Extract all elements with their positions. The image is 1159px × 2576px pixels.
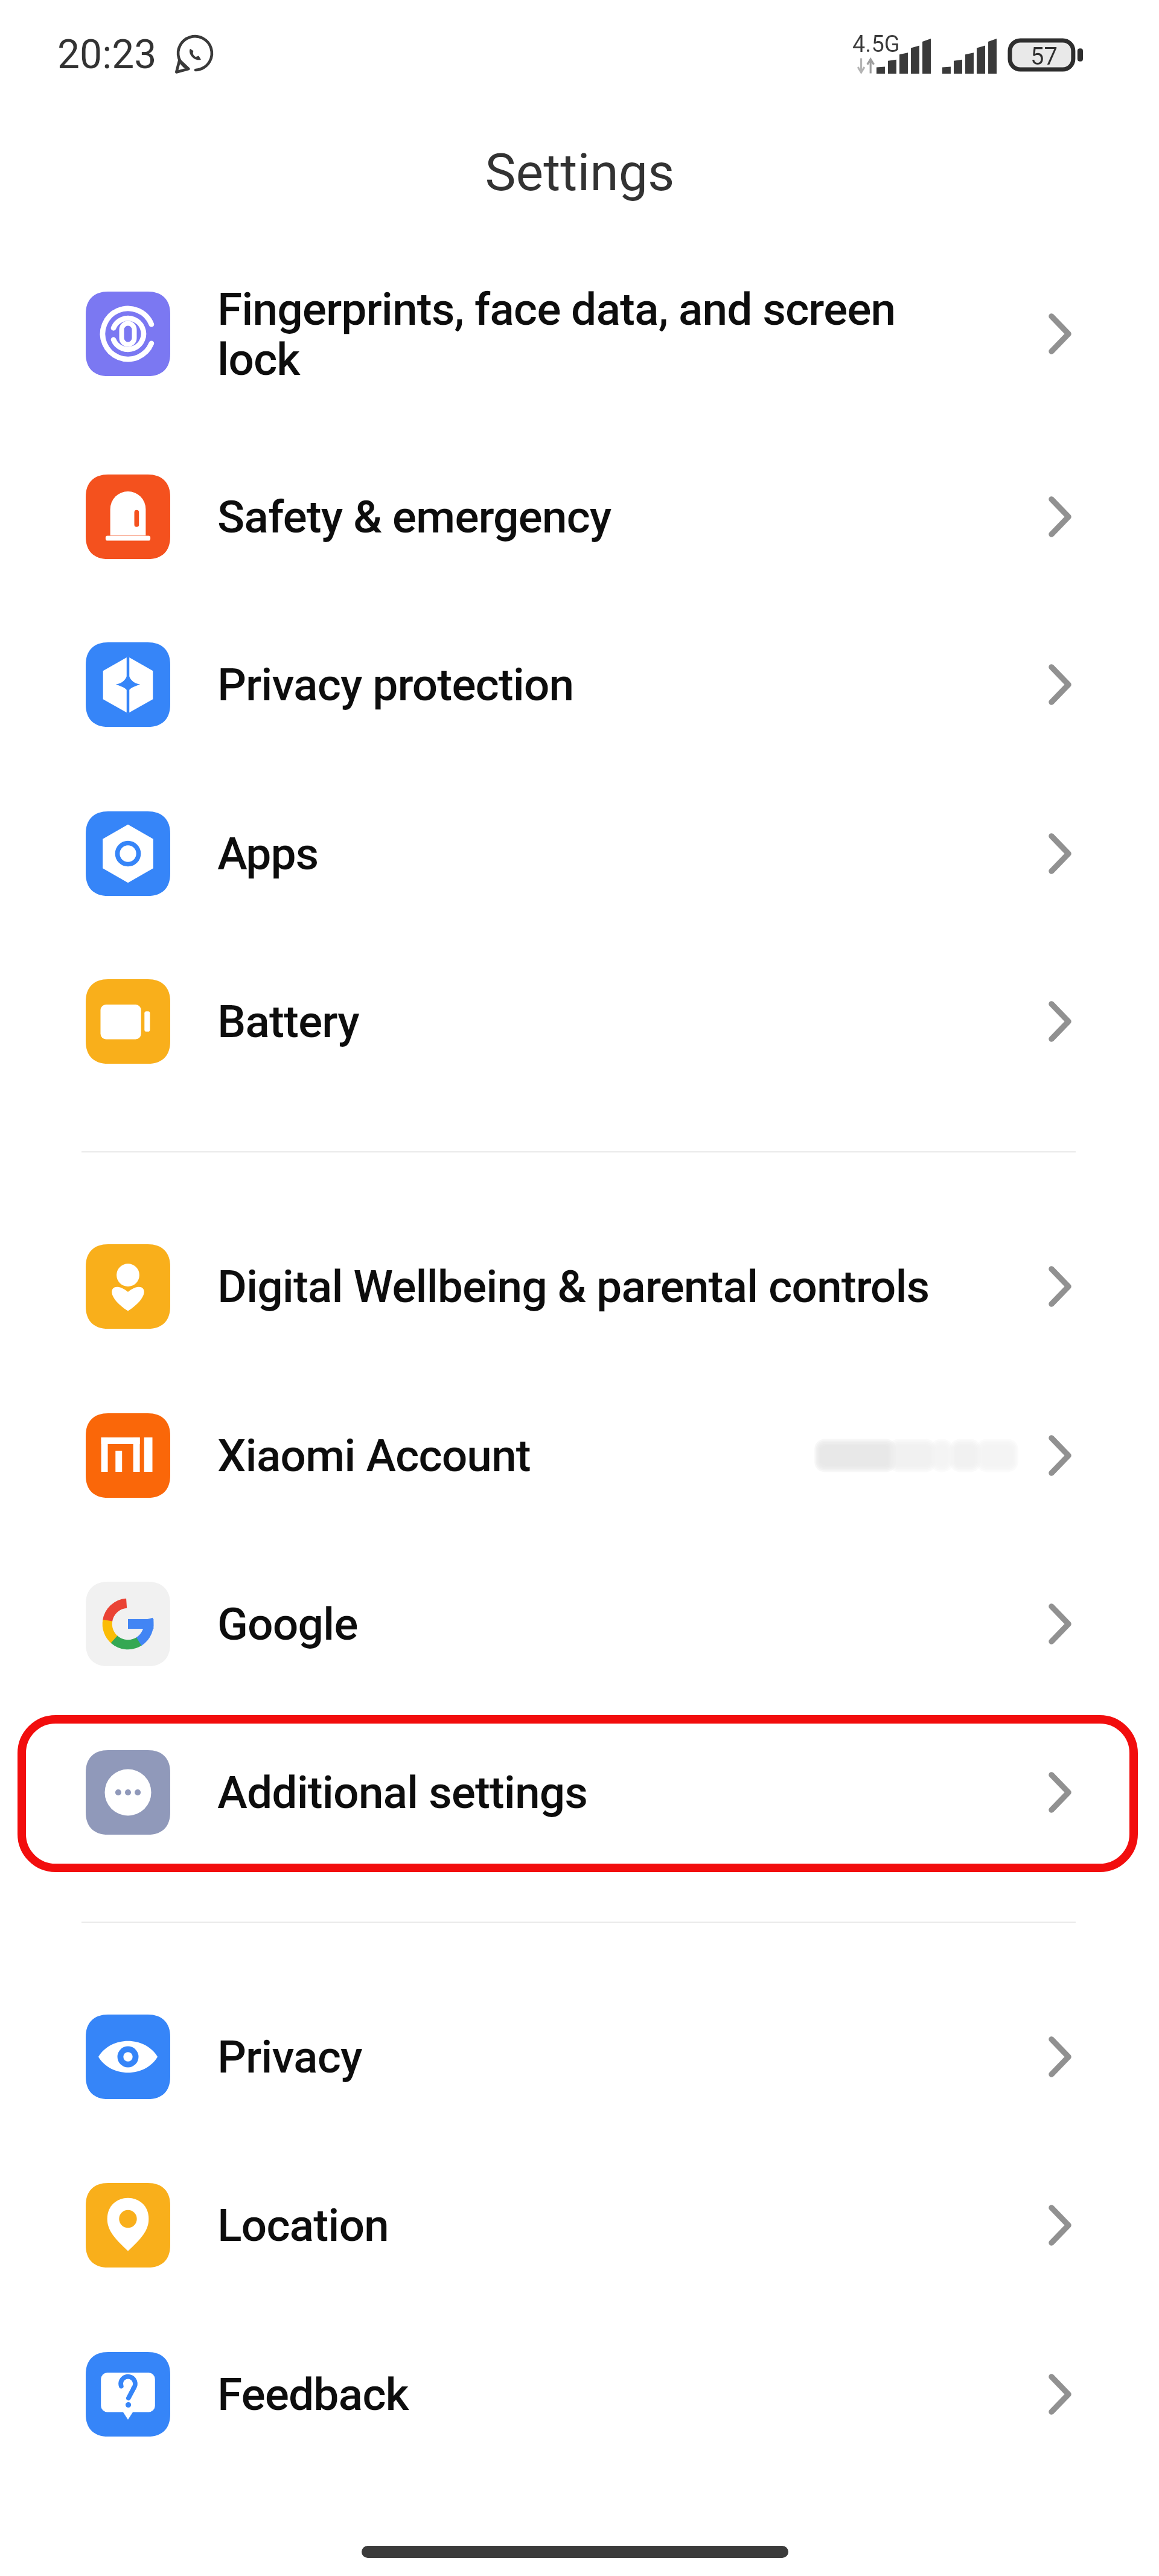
staticText: Xiaomi Account — [217, 1429, 531, 1482]
staticText: Battery — [217, 995, 359, 1048]
staticText: Feedback — [217, 2368, 409, 2421]
staticText: Apps — [217, 827, 319, 880]
staticText: Fingerprints, face data, and screen lock — [217, 283, 969, 386]
button[interactable]: Digital Wellbeing & parental controls — [0, 1202, 1159, 1371]
staticText: 57 — [1030, 42, 1058, 69]
staticText: Settings — [485, 142, 675, 203]
button[interactable]: Location — [0, 2141, 1159, 2310]
other: Battery 57 percent — [1008, 39, 1084, 71]
button[interactable]: Safety & emergency — [0, 432, 1159, 601]
staticText: Additional settings — [217, 1766, 588, 1819]
button[interactable]: Fingerprints, face data, and screen lock — [0, 249, 1159, 418]
staticText: Privacy protection — [217, 658, 574, 711]
button[interactable]: Feedback — [0, 2310, 1159, 2479]
button[interactable]: Privacy — [0, 1972, 1159, 2141]
button[interactable]: Xiaomi Account — [0, 1371, 1159, 1540]
button[interactable]: Google — [0, 1539, 1159, 1708]
other: WhatsApp notification — [176, 36, 214, 73]
button[interactable]: Additional settings — [0, 1708, 1159, 1877]
staticText: Privacy — [217, 2030, 362, 2083]
staticText: 4.5G — [852, 31, 900, 58]
staticText: Google — [217, 1597, 358, 1651]
staticText: Digital Wellbeing & parental controls — [217, 1260, 930, 1313]
button[interactable]: Privacy protection — [0, 600, 1159, 769]
staticText: Location — [217, 2199, 389, 2252]
button[interactable]: Apps — [0, 769, 1159, 938]
staticText: Safety & emergency — [217, 490, 611, 543]
button[interactable]: Battery — [0, 937, 1159, 1106]
staticText: 20:23 — [57, 31, 157, 78]
